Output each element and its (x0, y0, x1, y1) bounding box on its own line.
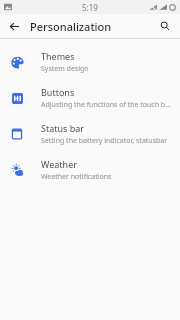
button[interactable]: Buttons (0, 80, 180, 116)
button[interactable]: Themes (0, 44, 180, 80)
button[interactable]: Back (4, 16, 24, 36)
staticText: Status bar (41, 122, 85, 134)
staticText: Personalization (30, 19, 155, 34)
button[interactable]: Status bar (0, 116, 180, 152)
button[interactable]: Search (155, 16, 175, 36)
staticText: System design (41, 64, 89, 74)
staticText: Themes (41, 50, 75, 62)
staticText: Setting the battery indicator, statusbar (41, 136, 168, 146)
staticText: Adjusting the functions of the touch but… (41, 100, 172, 110)
staticText: Buttons (41, 86, 75, 98)
button[interactable]: Weather (0, 152, 180, 188)
staticText: Weather (41, 158, 77, 170)
staticText: 5:19 (82, 2, 98, 13)
staticText: Weather notifications (41, 172, 112, 182)
